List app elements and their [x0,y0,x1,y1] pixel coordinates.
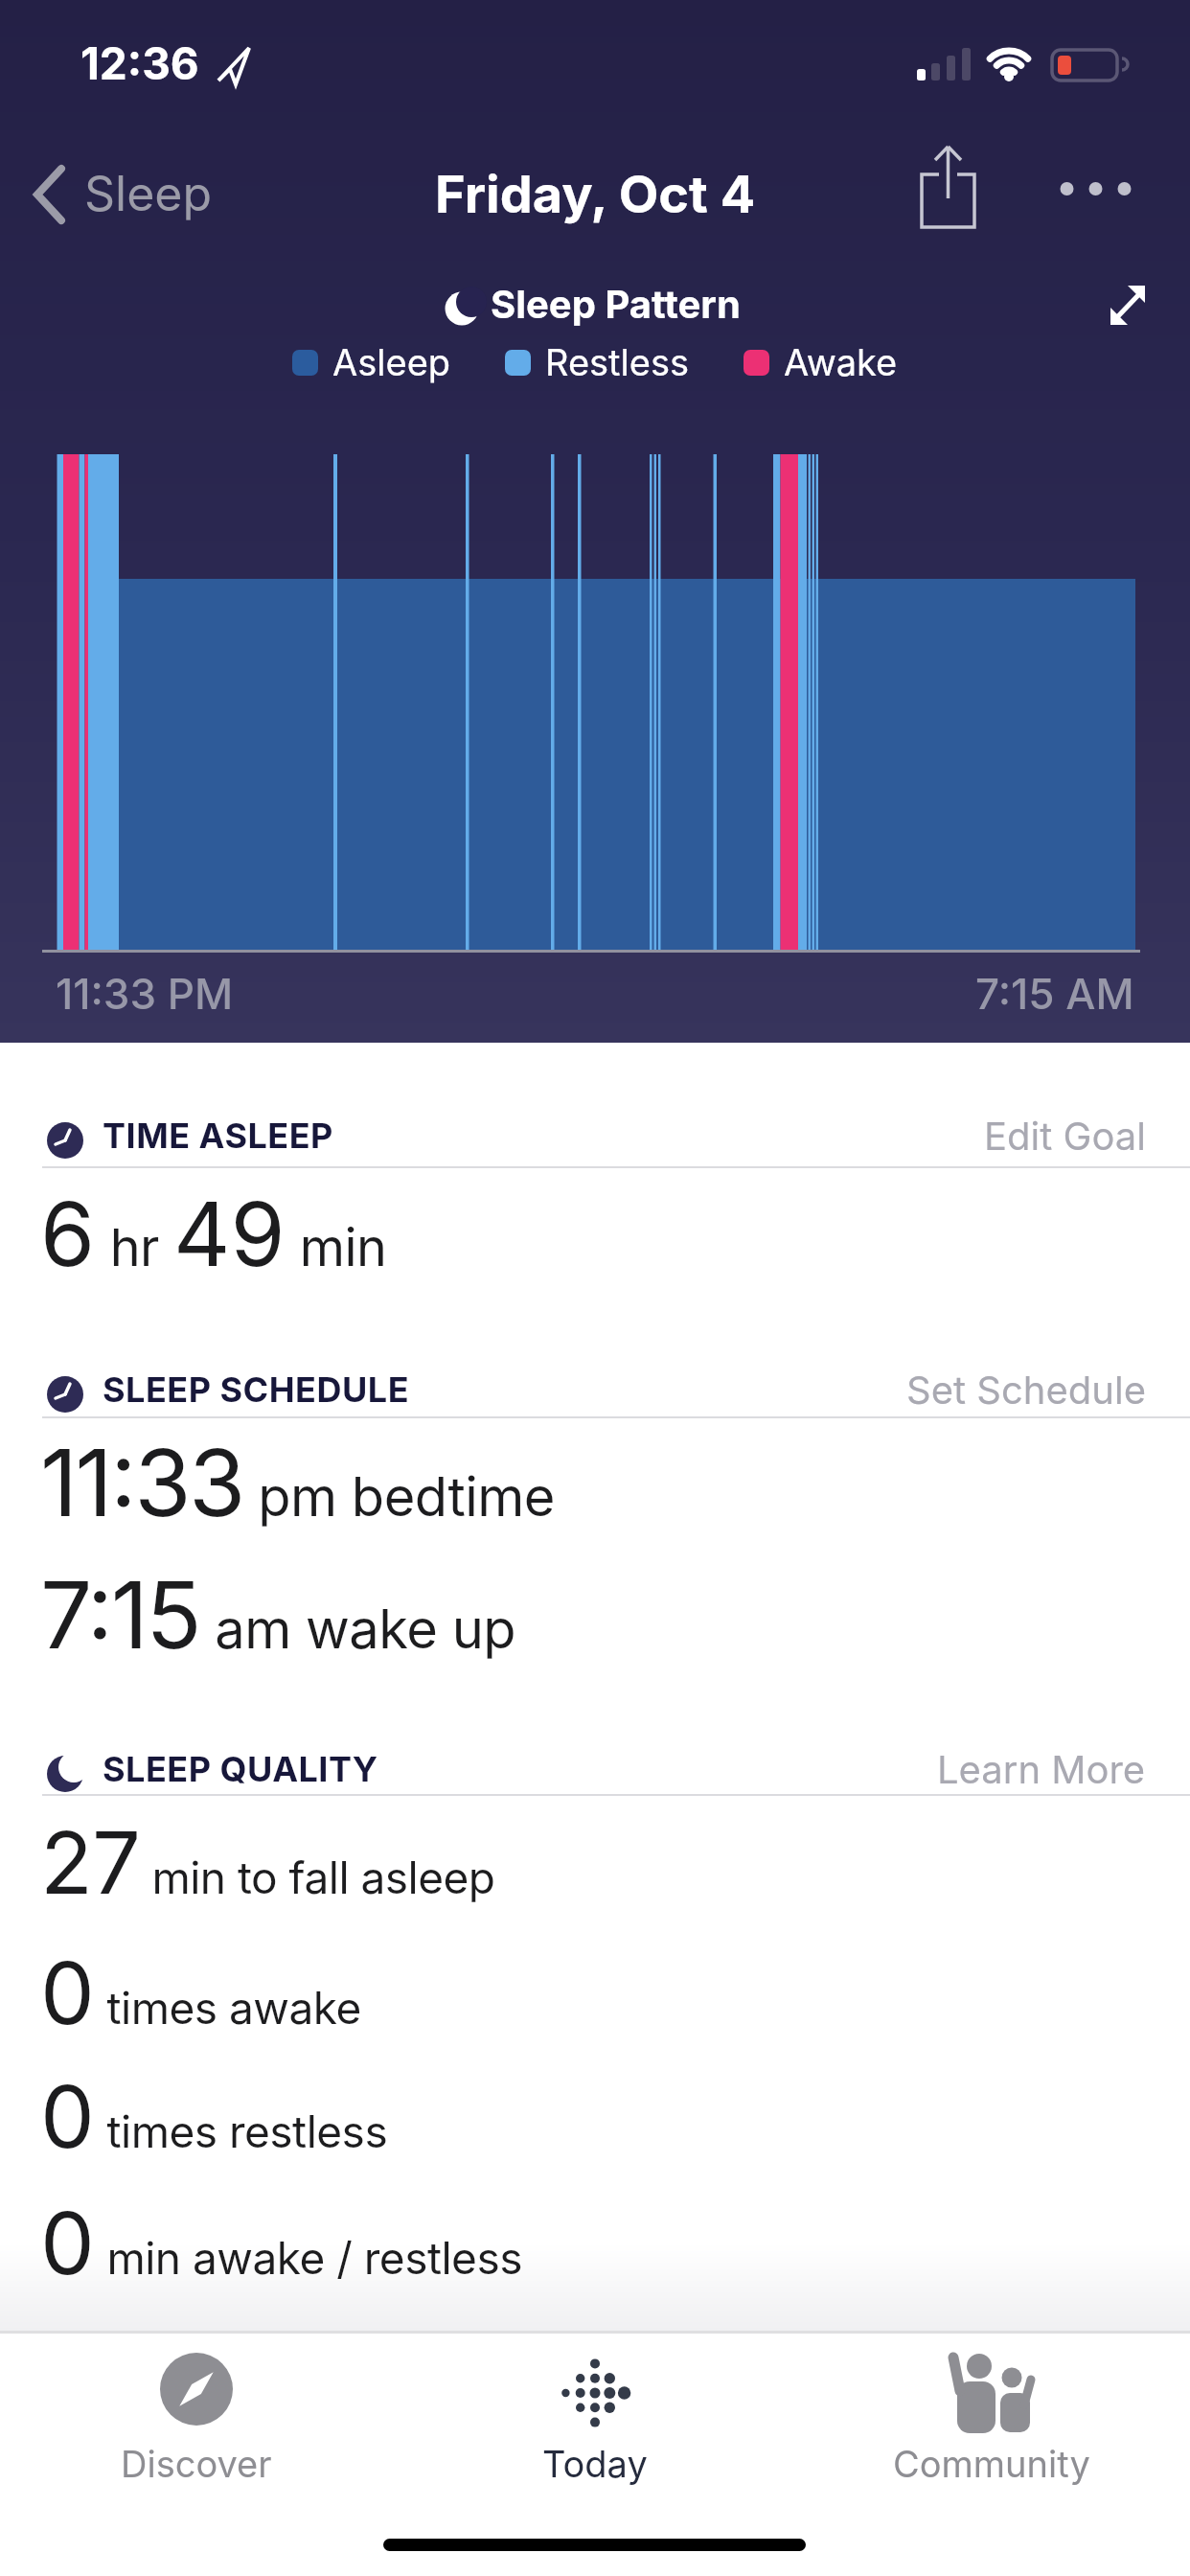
staticText: times restless [95,2104,388,2158]
staticText: 27 [40,1810,140,1915]
staticText: SLEEP QUALITY [103,1748,378,1790]
staticText: hr [96,1216,173,1278]
staticText: Set Schedule [906,1367,1146,1413]
staticText: Friday, Oct 4 [435,163,756,225]
button[interactable]: Today [475,2343,715,2496]
button[interactable]: Set Schedule [906,1367,1146,1413]
button[interactable] [1092,268,1169,345]
staticText: 12:36 [80,36,199,90]
staticText: 0 [40,1941,95,2045]
staticText: Sleep [84,165,213,222]
staticText: Discover [121,2442,272,2486]
button[interactable] [901,134,996,249]
staticText: Awake [784,340,898,384]
staticText: TIME ASLEEP [103,1115,333,1157]
staticText: min [286,1216,387,1278]
button[interactable] [1044,144,1159,240]
staticText: Learn More [937,1746,1146,1792]
button[interactable]: Community [872,2343,1111,2496]
staticText: 11:33 [40,1427,243,1538]
staticText: Today [542,2442,648,2486]
staticText: times awake [95,1981,361,2035]
staticText: min awake / restless [95,2231,522,2285]
staticText: Community [893,2442,1090,2486]
staticText: 49 [173,1181,286,1287]
staticText: Asleep [332,340,451,384]
staticText: min to fall asleep [140,1851,495,1904]
staticText: 0 [40,2064,95,2169]
staticText: 7:15 AM [975,968,1134,1019]
button[interactable]: Sleep [29,153,220,234]
staticText: Edit Goal [984,1113,1146,1159]
staticText: 11:33 PM [56,968,234,1019]
staticText: 6 [40,1181,96,1287]
staticText: Restless [545,340,690,384]
staticText: 7:15 [40,1559,200,1670]
button[interactable]: Learn More [937,1746,1146,1792]
staticText: am wake up [200,1597,516,1662]
staticText: pm bedtime [243,1464,555,1529]
button[interactable]: Edit Goal [984,1113,1146,1159]
staticText: Sleep Pattern [491,281,741,327]
staticText: 0 [40,2191,95,2295]
button[interactable]: Discover [77,2343,316,2496]
staticText: SLEEP SCHEDULE [103,1368,410,1411]
